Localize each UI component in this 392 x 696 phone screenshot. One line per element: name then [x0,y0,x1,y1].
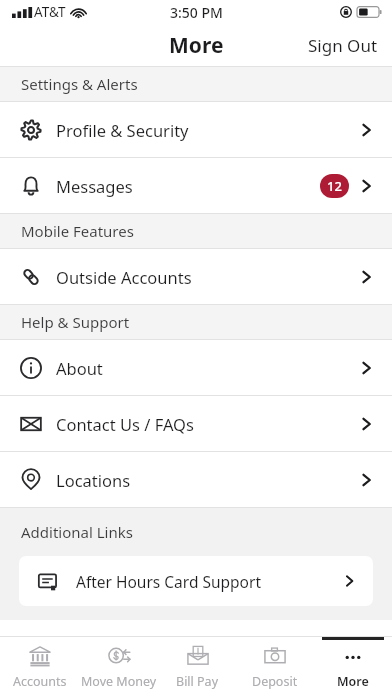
other: Deposit [263,644,287,668]
other: Bill Pay [186,644,210,668]
button[interactable]: Sign Out [294,28,392,63]
button[interactable]: Outside Accounts [0,249,392,304]
staticText: Bill Pay [176,673,219,690]
staticText: More [169,31,224,60]
other: Open [359,470,374,490]
staticText: Move Money [81,673,157,690]
staticText: 3:50 PM [170,3,223,22]
staticText: Settings & Alerts [21,74,138,94]
other: Accounts [28,644,52,668]
staticText: AT&T [34,3,66,21]
staticText: After Hours Card Support [76,571,261,592]
other: More [341,644,365,668]
staticText: More [337,673,369,690]
other: Move Money [107,644,131,668]
button[interactable]: Move Money [79,637,158,696]
staticText: About [56,357,103,379]
button[interactable]: Deposit [236,637,314,696]
staticText: 12 [327,177,342,195]
button[interactable]: Bill Pay [158,637,236,696]
button[interactable]: Contact Us / FAQs [0,396,392,451]
staticText: Accounts [13,673,67,690]
button[interactable]: Locations [0,452,392,507]
staticText: Help & Support [21,312,130,332]
button[interactable]: Messages [0,158,392,213]
button[interactable]: More [314,637,392,696]
staticText: Outside Accounts [56,266,192,288]
staticText: Profile & Security [56,119,189,141]
staticText: Messages [56,175,133,197]
staticText: Deposit [252,673,298,690]
staticText: Sign Out [308,34,378,57]
staticText: Mobile Features [21,221,134,241]
staticText: Locations [56,469,131,491]
other: Open [359,358,374,378]
button[interactable]: About [0,340,392,395]
staticText: Additional Links [21,522,133,542]
other: Open [359,267,374,287]
other: Open [359,176,374,196]
other: Open [343,572,356,590]
button[interactable]: Accounts [0,637,79,696]
staticText: Contact Us / FAQs [56,413,194,435]
other: Open [359,414,374,434]
button[interactable]: Profile & Security [0,102,392,157]
button[interactable]: After Hours Card Support [19,556,373,606]
other: Open [359,120,374,140]
